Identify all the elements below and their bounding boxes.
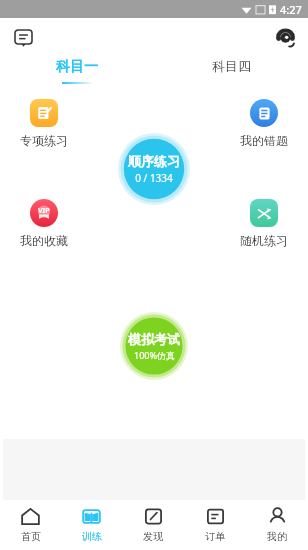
- button[interactable]: 专项练习: [12, 99, 76, 148]
- staticText: 科目四: [212, 58, 251, 74]
- staticText: 0 / 1334: [135, 171, 173, 185]
- staticText: 发现: [143, 530, 163, 543]
- staticText: 顺序练习: [128, 153, 180, 169]
- staticText: 我的: [267, 530, 287, 543]
- button[interactable]: 首页: [0, 500, 61, 550]
- button[interactable]: VIP: [12, 199, 76, 248]
- staticText: 模拟考试: [128, 331, 180, 347]
- button[interactable]: 随机练习: [232, 199, 296, 248]
- button[interactable]: Messages: [8, 23, 38, 53]
- button[interactable]: Customer service: [270, 23, 300, 53]
- staticText: 训练: [82, 530, 102, 543]
- staticText: 科目一: [56, 58, 98, 76]
- staticText: 我的错题: [240, 133, 288, 148]
- button[interactable]: 发现: [122, 500, 184, 550]
- staticText: 我的收藏: [20, 233, 68, 248]
- staticText: 4:27: [280, 2, 302, 17]
- button[interactable]: 我的错题: [232, 99, 296, 148]
- button[interactable]: 我的: [246, 500, 308, 550]
- staticText: 随机练习: [240, 233, 288, 248]
- button[interactable]: 训练: [61, 500, 122, 550]
- button[interactable]: 科目一: [0, 58, 154, 90]
- button[interactable]: 订单: [184, 500, 246, 550]
- button[interactable]: 模拟考试: [120, 312, 188, 380]
- staticText: 订单: [205, 530, 225, 543]
- staticText: VIP: [38, 206, 50, 216]
- staticText: 首页: [21, 530, 41, 543]
- staticText: 专项练习: [20, 133, 68, 148]
- staticText: 100%仿真: [134, 349, 175, 361]
- button[interactable]: 顺序练习: [118, 133, 190, 205]
- button[interactable]: 科目四: [154, 58, 308, 90]
